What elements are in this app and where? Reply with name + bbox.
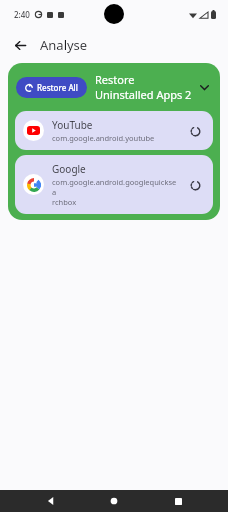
button[interactable]: Back [38,490,64,512]
button[interactable]: Restore [185,121,205,141]
staticText: 2:40 [14,9,30,20]
button[interactable]: Home [101,490,127,512]
staticText: Restore Uninstalled Apps 2 [95,72,194,102]
staticText: YouTube [52,118,93,132]
button[interactable]: Google [15,155,213,214]
button[interactable]: Back [6,31,34,59]
button[interactable]: Restore [185,175,205,195]
staticText: Analyse [40,36,88,54]
button[interactable]: Restore All [16,77,87,98]
button[interactable]: Restore All [8,63,220,111]
button[interactable]: YouTube [15,111,213,150]
staticText: com.google.android.googlequicksea rchbox [52,177,179,207]
staticText: com.google.android.youtube [52,133,155,143]
button[interactable]: Expand [194,77,214,97]
button[interactable]: Recent apps [165,490,191,512]
staticText: Google [52,162,86,176]
staticText: Restore All [37,82,78,93]
